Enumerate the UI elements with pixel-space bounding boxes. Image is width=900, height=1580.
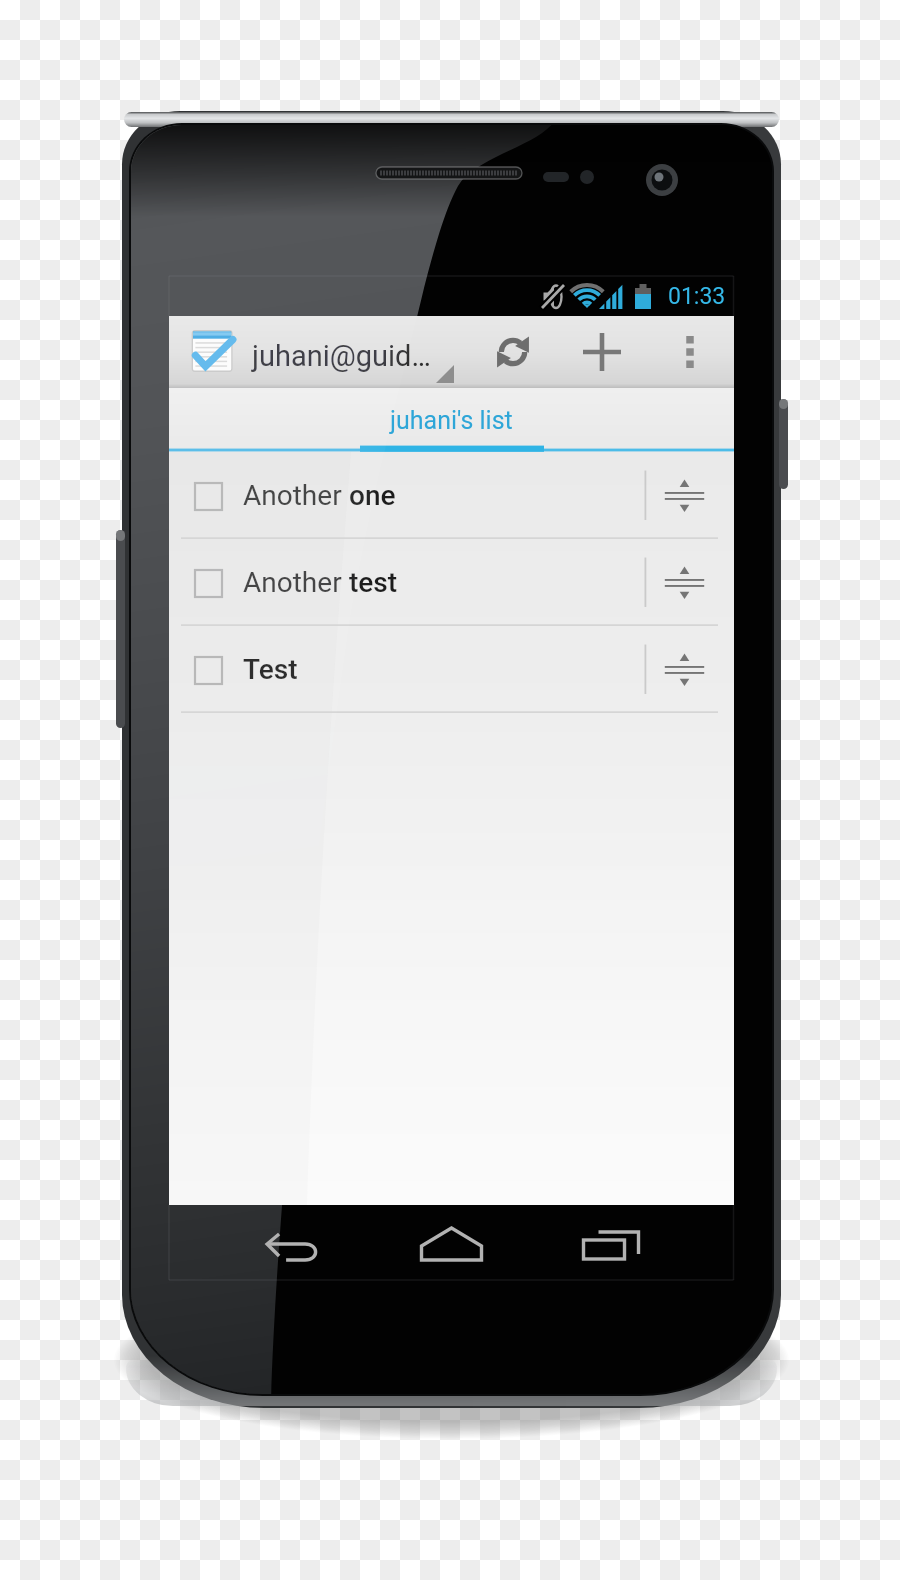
button[interactable]: Another — [169, 539, 734, 626]
button[interactable]: juhani@guid… — [169, 316, 469, 388]
staticText: test — [349, 566, 398, 599]
staticText: one — [349, 479, 396, 512]
button[interactable]: juhani's list — [169, 388, 734, 452]
button[interactable]: Another — [169, 452, 734, 539]
staticText: juhani@guid… — [252, 339, 431, 373]
staticText: Test — [243, 653, 298, 686]
staticText: juhani's list — [390, 406, 513, 435]
button[interactable]: Refresh — [469, 316, 557, 388]
staticText: 01:33 — [668, 283, 726, 310]
button[interactable]: Test — [169, 626, 734, 713]
staticText: Another — [243, 566, 349, 599]
staticText: Another — [243, 479, 349, 512]
button[interactable]: More options — [650, 316, 730, 388]
button[interactable]: Add — [558, 316, 646, 388]
